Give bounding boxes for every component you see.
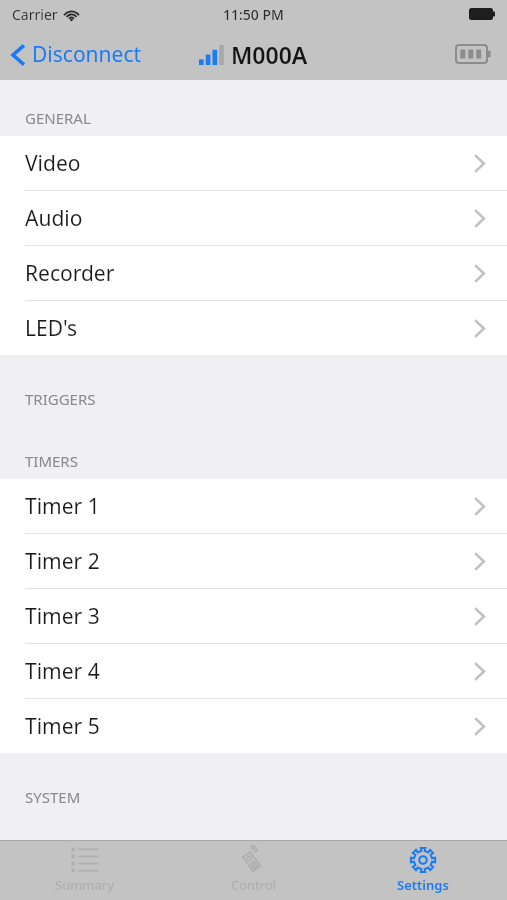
staticText: Timer 5 bbox=[25, 712, 100, 741]
staticText: Disconnect bbox=[32, 40, 142, 69]
staticText: LED's bbox=[25, 314, 78, 343]
button[interactable]: Timer 1 bbox=[0, 479, 507, 533]
staticText: Audio bbox=[25, 204, 83, 233]
staticText: TIMERS bbox=[25, 451, 78, 471]
staticText: SYSTEM bbox=[25, 787, 81, 807]
staticText: TRIGGERS bbox=[25, 389, 96, 409]
button[interactable]: Audio bbox=[0, 191, 507, 245]
staticText: Video bbox=[25, 149, 81, 178]
staticText: Timer 3 bbox=[25, 602, 100, 631]
staticText: Settings bbox=[397, 876, 449, 894]
button[interactable]: Settings bbox=[338, 841, 507, 900]
button[interactable]: Timer 2 bbox=[0, 534, 507, 588]
button[interactable]: Control bbox=[169, 841, 338, 900]
staticText: M000A bbox=[231, 39, 308, 70]
button[interactable]: Timer 5 bbox=[0, 699, 507, 753]
button[interactable]: Timer 3 bbox=[0, 589, 507, 643]
staticText: Timer 4 bbox=[25, 657, 100, 686]
staticText: Summary bbox=[55, 876, 114, 894]
staticText: Carrier bbox=[12, 5, 58, 24]
staticText: Control bbox=[231, 876, 277, 894]
button[interactable]: Summary bbox=[0, 841, 169, 900]
staticText: Timer 2 bbox=[25, 547, 100, 576]
button[interactable]: Timer 4 bbox=[0, 644, 507, 698]
staticText: Recorder bbox=[25, 259, 115, 288]
button[interactable]: Recorder bbox=[0, 246, 507, 300]
staticText: Timer 1 bbox=[25, 492, 100, 521]
staticText: GENERAL bbox=[25, 108, 91, 128]
button[interactable]: Battery status bbox=[453, 42, 493, 66]
staticText: 11:50 PM bbox=[223, 5, 284, 24]
button[interactable]: Video bbox=[0, 136, 507, 190]
button[interactable]: Disconnect bbox=[0, 34, 152, 75]
button[interactable]: LED's bbox=[0, 301, 507, 355]
